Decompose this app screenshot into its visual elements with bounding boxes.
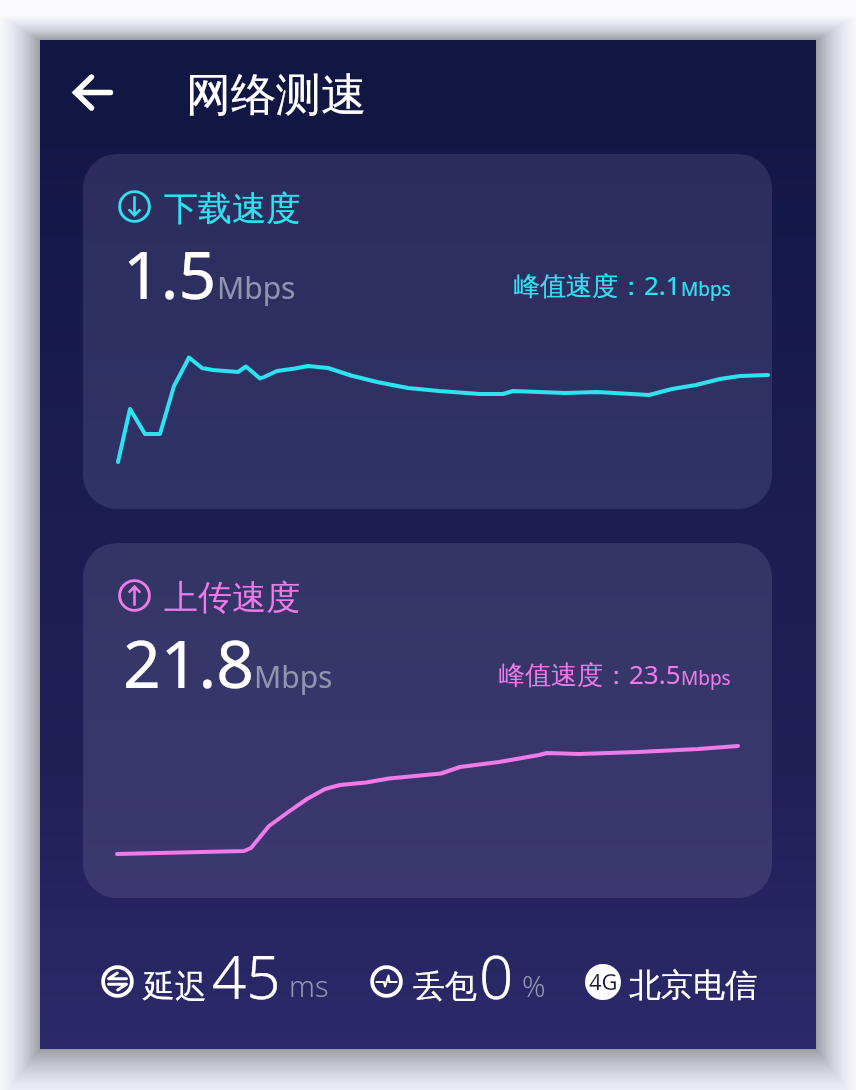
button[interactable]: 延迟 [98,935,398,1011]
staticText: ms [289,966,329,1005]
staticText: 上传速度 [164,576,300,619]
staticText: Mbps [681,276,731,302]
staticText: Mbps [254,656,333,697]
staticText: 0 [479,935,514,1011]
staticText: 丢包 [413,966,477,1006]
staticText: 北京电信 [629,965,757,1005]
staticText: 峰值速度：23.5 [499,656,681,692]
staticText: Mbps [681,665,731,691]
staticText: 45 [212,935,281,1011]
button[interactable]: 4G [583,934,758,1010]
button[interactable]: 上传速度 [83,543,772,898]
button[interactable]: 丢包 [367,935,557,1011]
staticText: Mbps [217,267,296,308]
staticText: 峰值速度：2.1 [514,267,681,303]
staticText: 延迟 [143,966,207,1006]
staticText: % [522,966,546,1005]
staticText: 下载速度 [164,187,300,230]
staticText: 21.8 [123,617,254,707]
button[interactable]: 下载速度 [83,154,772,509]
button[interactable]: Back [62,66,122,126]
staticText: 1.5 [123,228,217,318]
staticText: 4G [589,966,618,996]
staticText: 网络测速 [186,67,366,124]
